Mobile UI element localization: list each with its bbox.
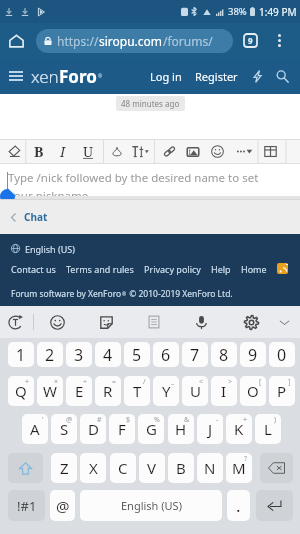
button[interactable] — [182, 139, 204, 164]
button[interactable]: F — [109, 414, 135, 444]
button[interactable]: !#1 — [8, 490, 45, 521]
button[interactable]: U — [182, 376, 208, 406]
staticText: D — [88, 419, 99, 439]
button[interactable]: Notices — [245, 64, 269, 88]
button[interactable]: Terms and rules — [66, 263, 144, 275]
staticText: @ — [66, 415, 73, 425]
button[interactable]: V — [139, 453, 165, 483]
button[interactable]: K — [226, 414, 252, 444]
staticText: J — [208, 419, 213, 439]
button[interactable]: @ — [50, 490, 75, 521]
button[interactable]: Menu — [4, 64, 28, 88]
button[interactable]: Home — [4, 29, 28, 53]
button[interactable]: M — [226, 453, 252, 483]
button[interactable]: Z — [51, 453, 77, 483]
button[interactable]: Register — [195, 59, 238, 94]
button[interactable]: Stickers — [92, 306, 120, 338]
button[interactable] — [129, 139, 151, 164]
button[interactable]: xen — [31, 59, 103, 94]
button[interactable]: Settings — [237, 306, 265, 338]
button[interactable]: Voice input — [187, 306, 215, 338]
staticText: English (US) — [121, 498, 182, 513]
button[interactable]: J — [197, 414, 223, 444]
button[interactable]: RSS — [277, 263, 288, 274]
button[interactable]: I — [211, 376, 237, 406]
button[interactable]: 3 — [66, 342, 92, 367]
staticText: @ — [56, 496, 70, 516]
button[interactable]: 0 — [269, 342, 295, 367]
button[interactable]: Backspace — [260, 453, 293, 483]
button[interactable]: 7 — [182, 342, 208, 367]
button[interactable]: Chat — [11, 210, 48, 224]
button[interactable]: U — [77, 139, 99, 164]
button[interactable] — [2, 139, 24, 164]
staticText: A — [30, 419, 40, 439]
staticText: 9 — [248, 35, 253, 46]
button[interactable]: N — [197, 453, 223, 483]
button[interactable]: B — [28, 139, 50, 164]
staticText: L — [264, 419, 272, 439]
button[interactable]: https:// — [36, 29, 233, 53]
button[interactable]: English (US) — [11, 242, 75, 255]
staticText: Z — [60, 458, 69, 478]
button[interactable] — [106, 139, 128, 164]
button[interactable]: 5 — [124, 342, 150, 367]
button[interactable]: Enter — [256, 490, 293, 521]
staticText: siropu.com — [99, 33, 163, 49]
button[interactable]: Q — [8, 376, 34, 406]
staticText: / — [143, 377, 146, 387]
button[interactable]: Emoji — [43, 306, 71, 338]
button[interactable]: 2 — [37, 342, 63, 367]
button[interactable]: 9 — [240, 342, 266, 367]
button[interactable]: Help — [211, 263, 241, 275]
staticText: O — [247, 381, 259, 401]
button[interactable]: Tabs, 9 open — [239, 29, 261, 51]
button[interactable]: Shift — [8, 453, 43, 483]
button[interactable]: L — [255, 414, 281, 444]
button[interactable] — [206, 139, 228, 164]
button[interactable]: Search — [270, 64, 294, 88]
button[interactable]: 6 — [153, 342, 179, 367]
staticText: × — [54, 377, 59, 387]
button[interactable]: English (US) — [80, 490, 222, 521]
button[interactable]: More — [270, 306, 298, 338]
button[interactable]: Clipboard — [140, 306, 168, 338]
button[interactable]: 4 — [95, 342, 121, 367]
button[interactable]: Privacy policy — [144, 263, 211, 275]
button[interactable]: W — [37, 376, 63, 406]
button[interactable] — [158, 139, 180, 164]
staticText: U — [83, 142, 94, 161]
staticText: W — [43, 381, 57, 401]
button[interactable]: . — [227, 490, 250, 521]
button[interactable]: Y — [153, 376, 179, 406]
staticText: < — [199, 377, 204, 387]
button[interactable]: Home — [241, 263, 277, 275]
button[interactable]: T — [124, 376, 150, 406]
button[interactable]: R — [95, 376, 121, 406]
staticText: Type /nick followed by the desired name … — [8, 170, 259, 186]
button[interactable]: X — [80, 453, 106, 483]
button[interactable]: C — [110, 453, 136, 483]
button[interactable]: H — [168, 414, 194, 444]
button[interactable]: P — [269, 376, 295, 406]
button[interactable] — [233, 139, 255, 164]
button[interactable]: I — [52, 139, 74, 164]
button[interactable]: D — [80, 414, 106, 444]
button[interactable]: E — [66, 376, 92, 406]
button[interactable]: S — [51, 414, 77, 444]
button[interactable]: Log in — [150, 59, 182, 94]
staticText: V — [147, 458, 157, 478]
staticText: 8 — [219, 344, 229, 366]
button[interactable]: Contact us — [11, 263, 66, 275]
button[interactable]: 1 — [8, 342, 34, 367]
staticText: 4 — [103, 344, 113, 366]
staticText: Contact us — [11, 263, 56, 275]
button[interactable]: B — [168, 453, 194, 483]
button[interactable]: Translate — [1, 306, 29, 338]
button[interactable]: O — [240, 376, 266, 406]
button[interactable]: More options — [268, 29, 290, 51]
button[interactable] — [259, 139, 281, 164]
button[interactable]: 8 — [211, 342, 237, 367]
button[interactable]: G — [138, 414, 164, 444]
button[interactable]: A — [22, 414, 48, 444]
